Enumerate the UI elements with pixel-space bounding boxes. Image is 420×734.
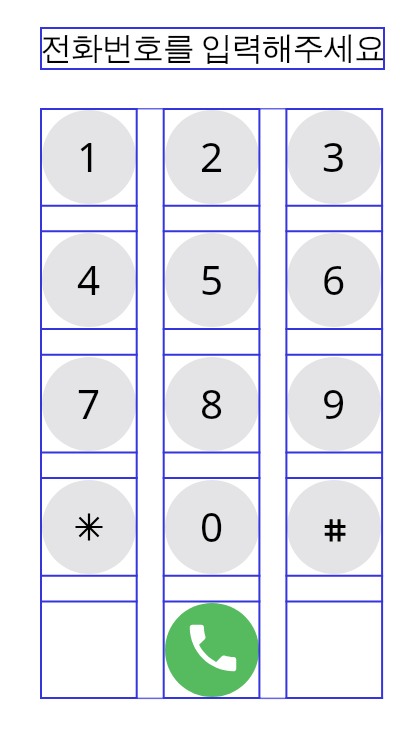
staticText: 4 [77, 252, 101, 307]
button[interactable] [40, 478, 138, 576]
button[interactable]: 5 [163, 231, 261, 329]
button[interactable]: 4 [40, 231, 138, 329]
button[interactable]: 3 [285, 108, 383, 206]
staticText: 2 [200, 129, 224, 184]
button[interactable]: 8 [163, 355, 261, 453]
button[interactable]: 7 [40, 355, 138, 453]
staticText: 5 [200, 252, 224, 307]
button[interactable] [163, 601, 261, 699]
staticText: 0 [200, 499, 224, 554]
staticText: 7 [77, 376, 101, 431]
staticText: 9 [322, 376, 346, 431]
button[interactable]: 2 [163, 108, 261, 206]
staticText: 6 [322, 252, 346, 307]
staticText: 전화번호를 입력해주세요 [40, 25, 385, 68]
staticText: 3 [322, 129, 346, 184]
staticText: 8 [200, 376, 224, 431]
button[interactable]: 6 [285, 231, 383, 329]
button[interactable]: 1 [40, 108, 138, 206]
button[interactable]: 9 [285, 355, 383, 453]
button[interactable] [285, 478, 383, 576]
staticText: 1 [77, 129, 101, 184]
button[interactable]: 0 [163, 478, 261, 576]
